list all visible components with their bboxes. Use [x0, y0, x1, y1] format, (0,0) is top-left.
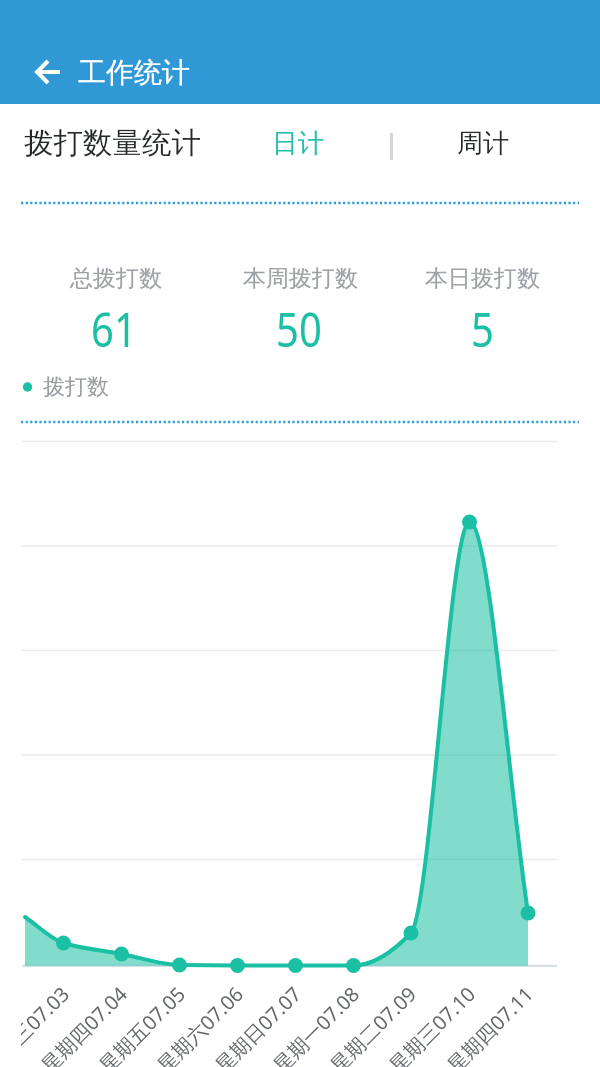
- button[interactable]: [33, 58, 61, 86]
- staticText: 星期五07.05: [92, 981, 191, 1067]
- staticText: 星期四07.11: [440, 981, 539, 1067]
- staticText: 星期四07.04: [34, 981, 133, 1067]
- button[interactable]: 拨打数量统计: [10, 104, 215, 183]
- staticText: 星期三07.10: [382, 981, 481, 1067]
- staticText: 星期六07.06: [150, 981, 249, 1067]
- staticText: 星期三07.03: [21, 981, 75, 1067]
- staticText: 总拨打数: [70, 264, 162, 293]
- staticText: 拨打数: [43, 373, 109, 401]
- staticText: 日计: [272, 127, 324, 160]
- staticText: 本周拨打数: [243, 264, 358, 293]
- staticText: 50: [276, 297, 322, 361]
- button[interactable]: 日计: [248, 104, 348, 183]
- staticText: 5: [471, 297, 494, 361]
- staticText: 星期一07.08: [266, 981, 365, 1067]
- button[interactable]: 周计: [433, 104, 533, 183]
- staticText: 拨打数量统计: [24, 125, 201, 162]
- staticText: 周计: [457, 127, 509, 160]
- staticText: 工作统计: [78, 55, 190, 90]
- staticText: 本日拨打数: [425, 264, 540, 293]
- staticText: 星期日07.07: [208, 981, 307, 1067]
- staticText: 61: [91, 297, 137, 361]
- staticText: 星期二07.09: [323, 981, 422, 1067]
